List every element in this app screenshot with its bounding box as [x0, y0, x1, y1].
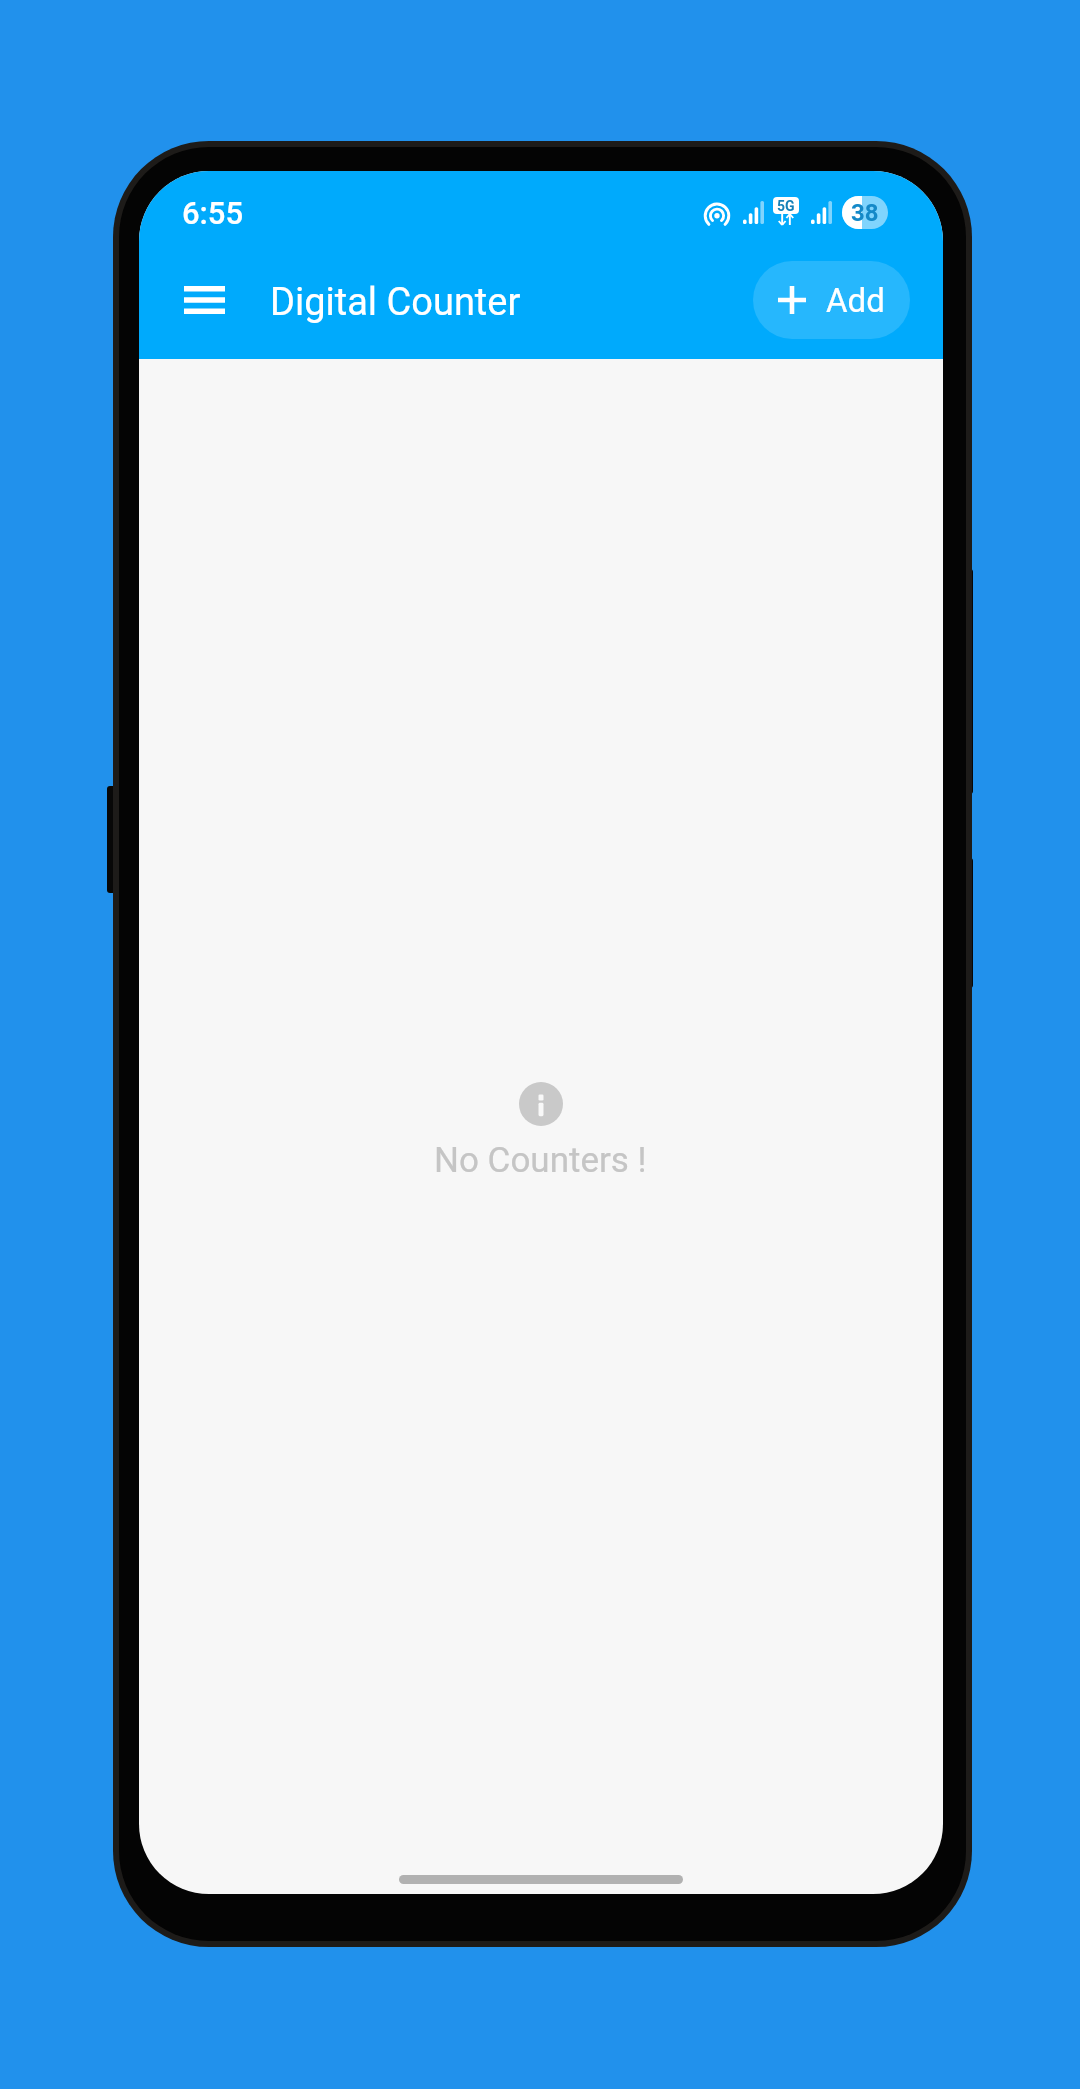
button[interactable]: Open navigation menu	[174, 273, 234, 333]
staticText: 38	[851, 199, 879, 227]
button[interactable]: Add	[753, 261, 910, 339]
staticText: 5G	[777, 198, 795, 214]
staticText: No Counters !	[434, 1140, 647, 1181]
staticText: Digital Counter	[270, 280, 521, 325]
staticText: 6:55	[182, 195, 244, 231]
staticText: Add	[826, 281, 885, 320]
